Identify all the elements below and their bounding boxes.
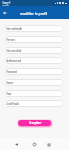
staticText: Numero de tel xyxy=(6,48,21,53)
button[interactable]: Addresse mail xyxy=(3,57,64,64)
staticText: Enregistrer xyxy=(29,121,41,125)
button[interactable]: Nom de famille xyxy=(3,25,64,32)
button[interactable]: Enregistrer xyxy=(18,120,51,126)
staticText: Code Postal xyxy=(6,101,18,106)
button[interactable]: France xyxy=(3,79,64,86)
button[interactable]: Password xyxy=(3,68,64,75)
staticText: modifier le profil xyxy=(20,11,48,16)
button[interactable]: Code Postal xyxy=(3,100,64,107)
button[interactable]: Prenom xyxy=(3,36,64,43)
button[interactable]: Paris xyxy=(3,90,64,97)
button[interactable]: Back xyxy=(1,6,9,19)
staticText: France xyxy=(6,80,13,85)
staticText: Password xyxy=(6,69,17,74)
staticText: Paris xyxy=(6,91,11,96)
staticText: Orange F xyxy=(2,1,11,5)
button[interactable]: Home xyxy=(29,138,40,150)
staticText: 4G 12:30 xyxy=(2,5,9,7)
button[interactable]: Recents xyxy=(43,138,54,150)
staticText: Nom de famille xyxy=(6,26,22,31)
staticText: Addresse mail xyxy=(6,58,21,63)
staticText: Prenom xyxy=(6,37,15,42)
button[interactable]: Numero de tel xyxy=(3,47,64,54)
button[interactable]: Back xyxy=(11,138,22,150)
